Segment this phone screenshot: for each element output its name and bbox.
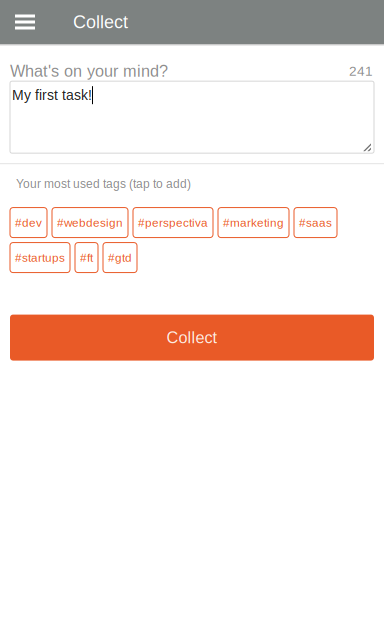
staticText: Your most used tags (tap to add) <box>16 177 191 191</box>
button[interactable]: #saas <box>294 208 337 238</box>
staticText: #marketing <box>223 216 284 229</box>
staticText: #webdesign <box>57 216 123 229</box>
staticText: #dev <box>15 216 42 229</box>
staticText: Collect <box>166 328 217 347</box>
button[interactable]: #perspectiva <box>133 208 213 238</box>
button[interactable]: #marketing <box>218 208 289 238</box>
staticText: #startups <box>15 251 65 264</box>
staticText: #ft <box>80 251 93 264</box>
staticText: 241 <box>349 63 373 79</box>
staticText: #saas <box>299 216 332 229</box>
button[interactable]: Collect <box>10 315 374 361</box>
button[interactable]: #webdesign <box>52 208 128 238</box>
button[interactable]: #dev <box>10 208 47 238</box>
staticText: #perspectiva <box>138 216 208 229</box>
button[interactable]: Menu <box>7 0 43 44</box>
staticText: Collect <box>73 12 128 32</box>
staticText: What's on your mind? <box>10 62 168 80</box>
button[interactable]: #gtd <box>103 243 137 273</box>
staticText: #gtd <box>108 251 132 264</box>
staticText: My first task! <box>12 87 92 103</box>
button[interactable]: #ft <box>75 243 98 273</box>
button[interactable]: #startups <box>10 243 70 273</box>
